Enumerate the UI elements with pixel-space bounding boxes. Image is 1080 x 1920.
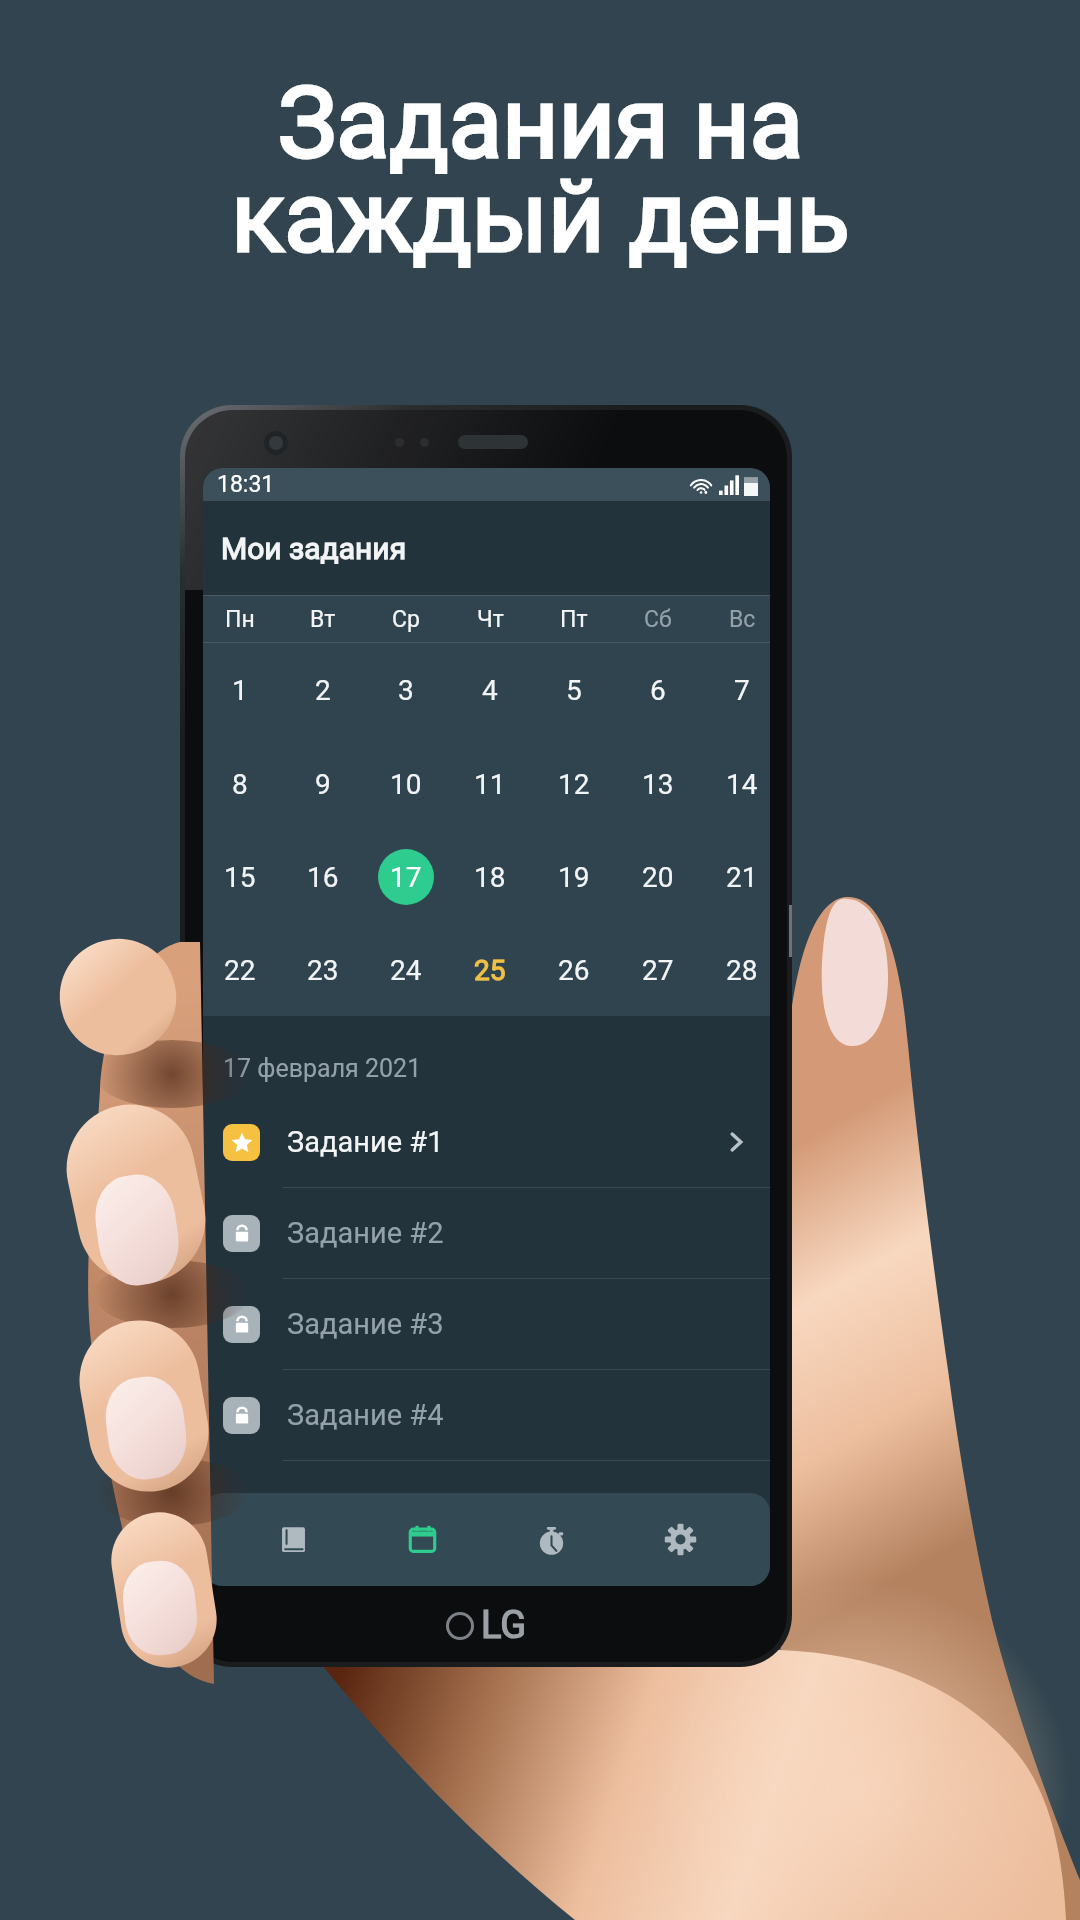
staticText: 25	[474, 954, 506, 987]
staticText: Ср	[392, 606, 420, 633]
staticText: 17 февраля 2021	[223, 1054, 422, 1083]
staticText: 22	[224, 954, 256, 987]
button[interactable]: Задание #2	[203, 1188, 770, 1278]
staticText: 14	[726, 768, 758, 801]
staticText: 5	[566, 674, 582, 707]
staticText: 21	[726, 861, 758, 894]
button[interactable]: Задание #4	[203, 1370, 770, 1460]
button[interactable]: 27	[630, 942, 686, 998]
button[interactable]: 20	[630, 849, 686, 905]
button[interactable]: 21	[714, 849, 770, 905]
staticText: Задание #3	[287, 1307, 444, 1341]
button[interactable]: 3	[378, 662, 434, 718]
staticText: Вс	[729, 606, 756, 633]
button[interactable]: Settings	[616, 1493, 745, 1586]
staticText: Задание #4	[287, 1398, 444, 1432]
button[interactable]: Book	[228, 1493, 358, 1586]
button[interactable]: 9	[295, 756, 351, 812]
button[interactable]: 23	[295, 942, 351, 998]
button[interactable]: 12	[546, 756, 602, 812]
staticText: каждый день	[231, 160, 850, 275]
button[interactable]: 24	[378, 942, 434, 998]
staticText: 8	[232, 768, 248, 801]
button[interactable]: 18	[462, 849, 518, 905]
staticText: 27	[642, 954, 674, 987]
button[interactable]: 10	[378, 756, 434, 812]
staticText: 19	[558, 861, 590, 894]
staticText: 6	[650, 674, 666, 707]
button[interactable]: Calendar	[358, 1493, 487, 1586]
staticText: 26	[558, 954, 590, 987]
button[interactable]: 26	[546, 942, 602, 998]
button[interactable]: 6	[630, 662, 686, 718]
button[interactable]: Timer	[487, 1493, 616, 1586]
staticText: Пн	[225, 606, 255, 633]
button[interactable]: 5	[546, 662, 602, 718]
button[interactable]: 16	[295, 849, 351, 905]
staticText: Пт	[560, 606, 588, 633]
staticText: 4	[482, 674, 498, 707]
button[interactable]: 14	[714, 756, 770, 812]
staticText: 17	[390, 861, 422, 894]
button[interactable]: 13	[630, 756, 686, 812]
staticText: 2	[315, 674, 331, 707]
staticText: 20	[642, 861, 674, 894]
button[interactable]: 1	[212, 662, 268, 718]
button[interactable]: 25	[462, 942, 518, 998]
button[interactable]: 19	[546, 849, 602, 905]
staticText: Задание #1	[287, 1125, 444, 1159]
staticText: 12	[558, 768, 590, 801]
button[interactable]: 17	[378, 849, 434, 905]
staticText: 23	[307, 954, 339, 987]
staticText: 15	[224, 861, 256, 894]
staticText: Задания на	[278, 66, 803, 181]
button[interactable]: 22	[212, 942, 268, 998]
staticText: 13	[642, 768, 674, 801]
staticText: 10	[390, 768, 422, 801]
button[interactable]: Задание #3	[203, 1279, 770, 1369]
staticText: 28	[726, 954, 758, 987]
button[interactable]: Задание #1	[203, 1097, 770, 1187]
staticText: 18	[474, 861, 506, 894]
staticText: 3	[398, 674, 414, 707]
button[interactable]: 28	[714, 942, 770, 998]
staticText: 1	[232, 674, 248, 707]
button[interactable]: 7	[714, 662, 770, 718]
button[interactable]: 15	[212, 849, 268, 905]
staticText: 9	[315, 768, 331, 801]
staticText: Вт	[310, 606, 336, 633]
staticText: Мои задания	[221, 531, 407, 566]
button[interactable]: 11	[462, 756, 518, 812]
staticText: Чт	[477, 606, 504, 633]
button[interactable]: 2	[295, 662, 351, 718]
staticText: 24	[390, 954, 422, 987]
staticText: 11	[474, 768, 506, 801]
button[interactable]: 4	[462, 662, 518, 718]
staticText: Задание #2	[287, 1216, 444, 1250]
staticText: LG	[481, 1603, 527, 1648]
staticText: 18:31	[217, 471, 275, 498]
button[interactable]: 8	[212, 756, 268, 812]
staticText: 7	[734, 674, 750, 707]
staticText: 16	[307, 861, 339, 894]
staticText: Сб	[644, 606, 672, 633]
